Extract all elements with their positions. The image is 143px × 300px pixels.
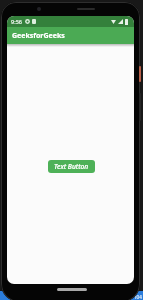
staticText: GeeksforGeeks	[12, 31, 65, 41]
button[interactable]: Text Button	[48, 160, 95, 173]
staticText: 9:56	[11, 18, 22, 25]
staticText: 104	[134, 294, 142, 300]
staticText: Text Button	[54, 162, 89, 171]
